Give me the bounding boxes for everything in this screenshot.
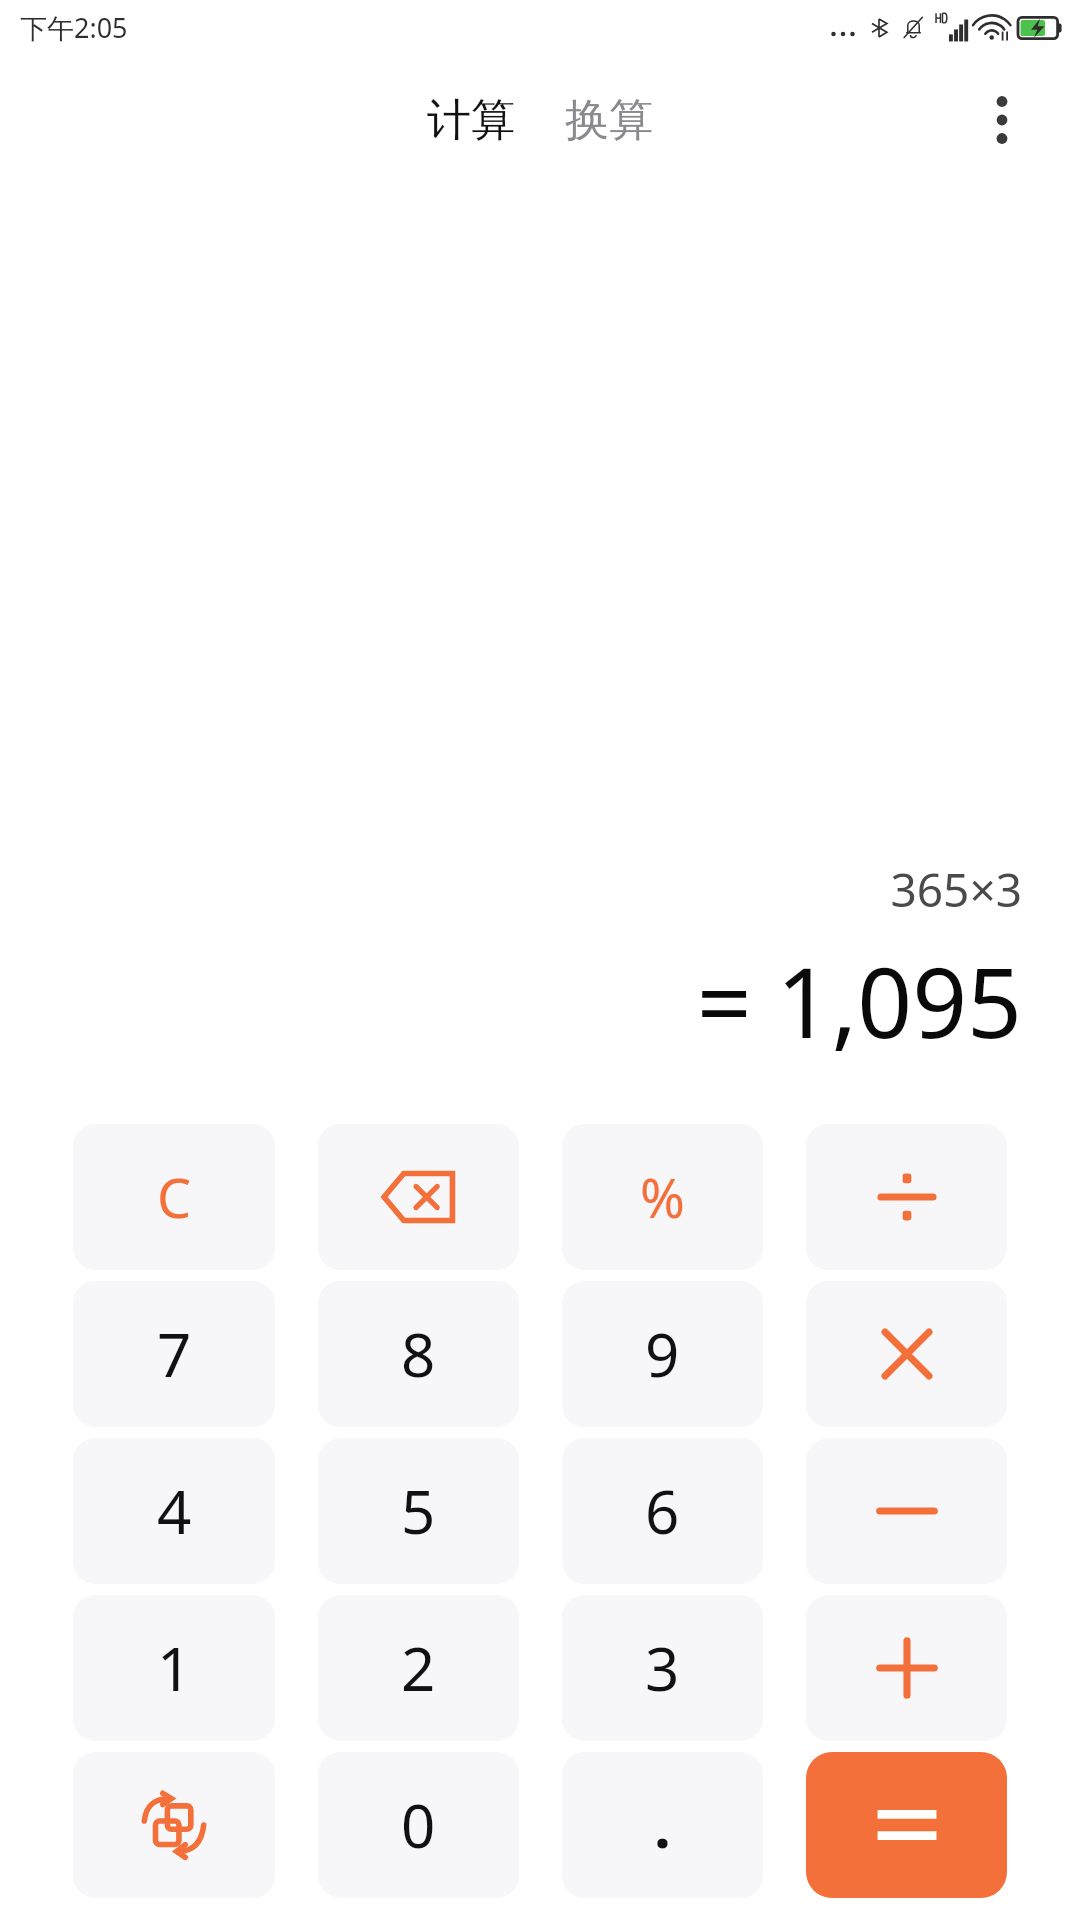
button[interactable]: . — [562, 1752, 763, 1898]
button[interactable]: 8 — [318, 1281, 519, 1427]
button[interactable]: 换算 — [557, 87, 661, 154]
button[interactable]: 1 — [73, 1595, 275, 1741]
staticText: C — [157, 1160, 192, 1234]
button[interactable]: 5 — [318, 1438, 519, 1584]
staticText: 2 — [401, 1627, 436, 1709]
button[interactable]: More options — [966, 84, 1038, 156]
staticText: . — [654, 1784, 671, 1866]
staticText: 3 — [645, 1627, 680, 1709]
button[interactable]: 6 — [562, 1438, 763, 1584]
button[interactable]: Equals — [806, 1752, 1007, 1898]
button[interactable]: Minus — [806, 1438, 1007, 1584]
button[interactable]: Clear — [73, 1124, 275, 1270]
staticText: 5 — [401, 1470, 436, 1552]
staticText: 1 — [157, 1627, 192, 1709]
button[interactable]: 3 — [562, 1595, 763, 1741]
button[interactable]: 9 — [562, 1281, 763, 1427]
staticText: 计算 — [427, 93, 515, 148]
button[interactable]: Multiply — [806, 1281, 1007, 1427]
button[interactable]: 7 — [73, 1281, 275, 1427]
staticText: 0 — [401, 1784, 436, 1866]
button[interactable]: 2 — [318, 1595, 519, 1741]
staticText: 换算 — [565, 93, 653, 148]
button[interactable]: Percent — [562, 1124, 763, 1270]
button[interactable]: 计算 — [419, 87, 523, 154]
button[interactable]: Backspace — [318, 1124, 519, 1270]
button[interactable]: Divide — [806, 1124, 1007, 1270]
staticText: % — [640, 1160, 685, 1234]
staticText: 365×3 — [890, 858, 1022, 921]
button[interactable]: Plus — [806, 1595, 1007, 1741]
button[interactable]: 4 — [73, 1438, 275, 1584]
staticText: 下午2:05 — [20, 9, 128, 46]
staticText: 9 — [645, 1313, 680, 1395]
button[interactable]: 0 — [318, 1752, 519, 1898]
staticText: 4 — [157, 1470, 192, 1552]
staticText: 8 — [401, 1313, 436, 1395]
staticText: = 1,095 — [696, 935, 1022, 1066]
button[interactable]: Unit converter — [73, 1752, 275, 1898]
staticText: 6 — [645, 1470, 680, 1552]
staticText: 7 — [157, 1313, 192, 1395]
